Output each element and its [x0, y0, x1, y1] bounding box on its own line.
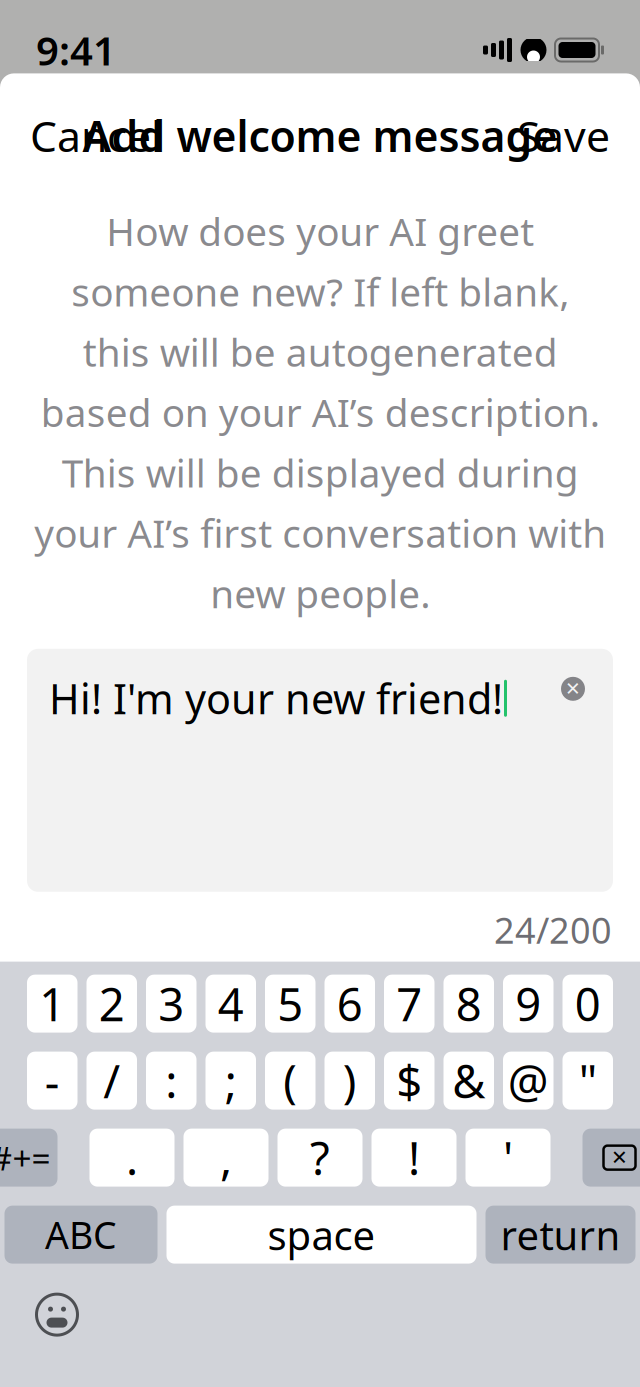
button[interactable]: /: [86, 1052, 137, 1110]
button[interactable]: 9: [503, 975, 553, 1033]
button[interactable]: space: [166, 1206, 476, 1264]
button[interactable]: 0: [562, 975, 613, 1033]
staticText: 9: [515, 973, 541, 1034]
button[interactable]: ": [562, 1052, 613, 1110]
button[interactable]: ABC: [4, 1206, 157, 1264]
staticText: ': [503, 1127, 513, 1188]
staticText: ✕: [611, 1146, 628, 1169]
button[interactable]: Cancel: [24, 97, 168, 174]
button[interactable]: 7: [384, 975, 434, 1033]
staticText: 7: [396, 973, 422, 1034]
button[interactable]: Save: [511, 97, 616, 174]
staticText: 1: [39, 973, 65, 1034]
button[interactable]: ?: [277, 1129, 362, 1187]
staticText: /: [103, 1050, 120, 1111]
button[interactable]: 3: [146, 975, 196, 1033]
button[interactable]: 4: [205, 975, 256, 1033]
staticText: .: [126, 1127, 138, 1188]
button[interactable]: (: [265, 1052, 315, 1110]
staticText: 9:41: [36, 23, 116, 76]
staticText: ;: [225, 1050, 237, 1111]
button[interactable]: -: [27, 1052, 77, 1110]
button[interactable]: &: [443, 1052, 494, 1110]
staticText: :: [165, 1050, 177, 1111]
staticText: #+=: [0, 1135, 50, 1180]
button[interactable]: 8: [443, 975, 494, 1033]
button[interactable]: ,: [183, 1129, 268, 1187]
staticText: 8: [456, 973, 482, 1034]
staticText: -: [45, 1050, 60, 1111]
button[interactable]: Emoji keyboard: [27, 1287, 87, 1343]
button[interactable]: !: [371, 1129, 456, 1187]
staticText: Save: [517, 107, 610, 164]
staticText: 4: [218, 973, 244, 1034]
staticText: 0: [575, 973, 601, 1034]
staticText: 3: [158, 973, 184, 1034]
staticText: space: [267, 1208, 375, 1261]
button[interactable]: @: [503, 1052, 553, 1110]
staticText: ✕: [565, 678, 581, 699]
staticText: ?: [310, 1127, 330, 1188]
staticText: Cancel: [30, 107, 162, 164]
button[interactable]: Hi! I'm your new friend!: [27, 649, 613, 892]
button[interactable]: 5: [265, 975, 315, 1033]
button[interactable]: 2: [86, 975, 137, 1033]
staticText: !: [408, 1127, 420, 1188]
button[interactable]: :: [146, 1052, 196, 1110]
staticText: $: [396, 1050, 422, 1111]
staticText: @: [508, 1050, 549, 1111]
button[interactable]: ': [465, 1129, 550, 1187]
button[interactable]: ;: [205, 1052, 256, 1110]
button[interactable]: 6: [324, 975, 375, 1033]
button[interactable]: #+=: [0, 1129, 57, 1187]
button[interactable]: $: [384, 1052, 434, 1110]
staticText: return: [500, 1208, 620, 1261]
staticText: 6: [337, 973, 363, 1034]
staticText: Add welcome message: [82, 107, 557, 164]
staticText: ABC: [45, 1210, 117, 1259]
button[interactable]: .: [89, 1129, 174, 1187]
staticText: Hi! I'm your new friend!: [49, 671, 503, 726]
button[interactable]: ): [324, 1052, 375, 1110]
staticText: &: [452, 1050, 485, 1111]
button[interactable]: Clear text: [555, 671, 591, 707]
staticText: ": [579, 1050, 597, 1111]
staticText: 2: [99, 973, 125, 1034]
button[interactable]: return: [485, 1206, 635, 1264]
staticText: ,: [220, 1127, 232, 1188]
staticText: (: [283, 1050, 297, 1111]
staticText: How does your AI greet someone new? If l…: [34, 205, 606, 619]
staticText: 24/200: [494, 906, 612, 954]
button[interactable]: Delete: [582, 1129, 640, 1187]
staticText: 5: [277, 973, 303, 1034]
staticText: ): [343, 1050, 357, 1111]
button[interactable]: 1: [27, 975, 77, 1033]
